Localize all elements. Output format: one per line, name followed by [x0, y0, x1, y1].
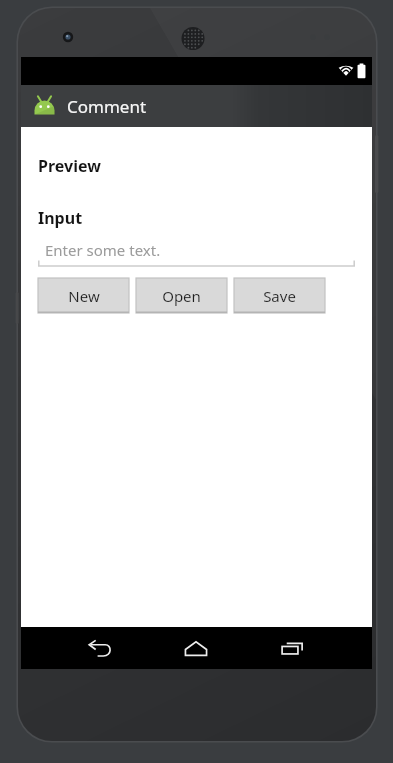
staticText: Preview [38, 155, 101, 177]
button[interactable]: Back [73, 627, 127, 669]
button[interactable]: Open [136, 278, 227, 313]
staticText: Open [162, 286, 201, 306]
staticText: Enter some text. [45, 240, 161, 260]
button[interactable]: Recent apps [265, 627, 319, 669]
button[interactable]: Home [169, 627, 223, 669]
staticText: Save [263, 286, 296, 306]
button[interactable]: Enter some text. [38, 237, 355, 267]
button[interactable]: New [38, 278, 129, 313]
button[interactable]: Save [234, 278, 325, 313]
staticText: Input [38, 207, 83, 229]
staticText: Comment [67, 95, 147, 118]
staticText: New [68, 286, 100, 306]
